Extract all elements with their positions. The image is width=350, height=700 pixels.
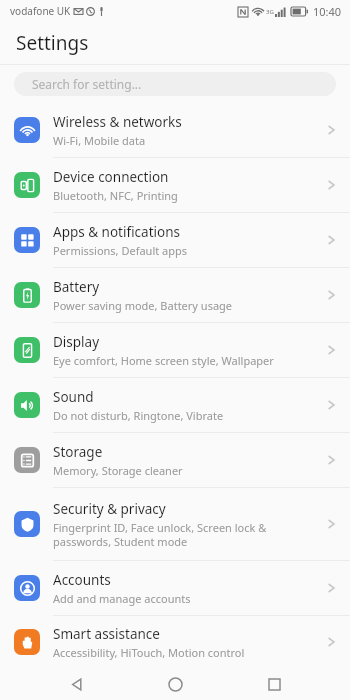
staticText: Battery: [53, 278, 100, 296]
staticText: Wireless & networks: [53, 113, 182, 131]
staticText: Smart assistance: [53, 625, 160, 643]
button[interactable]: Apps & notifications: [0, 213, 350, 267]
button[interactable]: Search for setting...: [14, 72, 336, 96]
staticText: Fingerprint ID, Face unlock, Screen lock…: [53, 520, 267, 549]
staticText: Bluetooth, NFC, Printing: [53, 188, 178, 203]
staticText: Display: [53, 333, 100, 351]
button[interactable]: Storage: [0, 433, 350, 487]
button[interactable]: Smart assistance: [0, 616, 350, 668]
staticText: Security & privacy: [53, 500, 166, 518]
button[interactable]: Battery: [0, 268, 350, 322]
button[interactable]: Back: [55, 668, 99, 700]
staticText: Add and manage accounts: [53, 591, 191, 606]
staticText: Sound: [53, 388, 94, 406]
staticText: vodafone UK: [10, 4, 71, 18]
staticText: Power saving mode, Battery usage: [53, 298, 233, 313]
staticText: Eye comfort, Home screen style, Wallpape…: [53, 353, 274, 368]
staticText: Device connection: [53, 168, 169, 186]
staticText: 3G: [266, 8, 274, 16]
button[interactable]: Wireless & networks: [0, 103, 350, 157]
staticText: Settings: [16, 30, 89, 56]
staticText: Permissions, Default apps: [53, 243, 188, 258]
staticText: 10:40: [313, 4, 342, 19]
button[interactable]: Home: [153, 668, 197, 700]
staticText: Wi-Fi, Mobile data: [53, 133, 146, 148]
button[interactable]: Device connection: [0, 158, 350, 212]
button[interactable]: Display: [0, 323, 350, 377]
button[interactable]: Sound: [0, 378, 350, 432]
staticText: Do not disturb, Ringtone, Vibrate: [53, 408, 224, 423]
staticText: Search for setting...: [32, 76, 142, 92]
button[interactable]: Security & privacy: [0, 488, 350, 560]
staticText: Accessibility, HiTouch, Motion control: [53, 645, 245, 660]
staticText: Memory, Storage cleaner: [53, 463, 183, 478]
button[interactable]: Recent apps: [252, 668, 296, 700]
staticText: Accounts: [53, 571, 111, 589]
button[interactable]: Accounts: [0, 561, 350, 615]
staticText: Storage: [53, 443, 103, 461]
staticText: Apps & notifications: [53, 223, 180, 241]
